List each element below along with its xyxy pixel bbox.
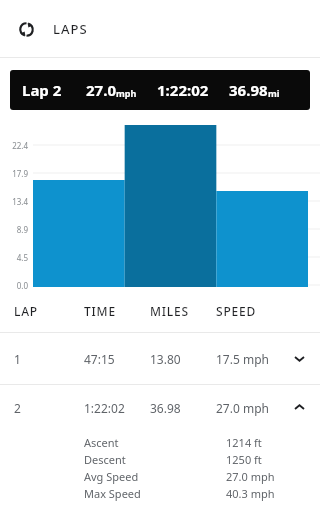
staticText: 17.9 [4, 168, 28, 179]
staticText: MILES [150, 303, 189, 319]
button[interactable]: 1 [0, 333, 320, 384]
staticText: 13.80 [150, 351, 181, 367]
staticText: 1214 ft [226, 435, 262, 450]
staticText: 1250 ft [226, 452, 262, 467]
staticText: mi [268, 87, 280, 99]
staticText: Avg Speed [84, 469, 139, 484]
button[interactable]: Laps [13, 16, 39, 42]
staticText: 2 [14, 400, 21, 416]
button[interactable]: Collapse [278, 385, 320, 430]
staticText: 4.5 [4, 252, 28, 263]
staticText: 1:22:02 [84, 400, 125, 416]
staticText: 40.3 mph [226, 486, 275, 501]
staticText: Ascent [84, 435, 119, 450]
staticText: 36.98 [229, 80, 268, 100]
staticText: mph [116, 87, 137, 99]
button[interactable]: Expand [278, 333, 320, 384]
staticText: 47:15 [84, 351, 115, 367]
staticText: 17.5 mph [216, 351, 269, 367]
staticText: 1:22:02 [157, 80, 209, 100]
staticText: LAPS [53, 20, 88, 38]
staticText: Descent [84, 452, 126, 467]
staticText: 22.4 [4, 140, 28, 151]
staticText: SPEED [216, 303, 257, 319]
staticText: Max Speed [84, 486, 141, 501]
staticText: 36.98 [150, 400, 181, 416]
staticText: LAP [14, 303, 38, 319]
staticText: 13.4 [4, 196, 28, 207]
staticText: 8.9 [4, 224, 28, 235]
staticText: 27.0 mph [216, 400, 269, 416]
staticText: TIME [84, 303, 116, 319]
staticText: 27.0 mph [226, 469, 275, 484]
button[interactable]: 2 [0, 385, 320, 430]
staticText: Lap 2 [22, 80, 62, 100]
button[interactable]: Lap 2 [10, 70, 310, 110]
staticText: 27.0 [86, 80, 116, 100]
staticText: 1 [14, 351, 21, 367]
staticText: 0.0 [4, 280, 28, 291]
